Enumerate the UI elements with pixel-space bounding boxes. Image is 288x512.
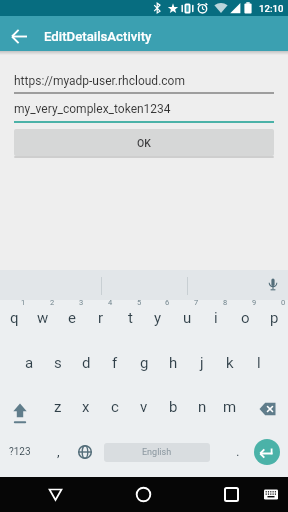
staticText: c [111,398,119,416]
staticText: t [128,309,133,327]
staticText: 6 [165,298,170,307]
button[interactable]: v [130,387,158,427]
staticText: 8 [223,298,228,307]
staticText: o [241,309,250,327]
staticText: English [142,447,172,458]
button[interactable] [254,439,280,465]
staticText: g [140,354,149,372]
button[interactable]: a [15,343,43,383]
staticText: s [54,354,62,372]
staticText: z [54,398,62,416]
staticText: j [200,354,204,372]
staticText: x [82,398,90,416]
button[interactable]: m [216,387,244,427]
button[interactable]: . [228,436,248,466]
button[interactable] [6,23,33,50]
staticText: v [140,398,148,416]
staticText: y [154,309,162,327]
staticText: u [183,309,192,327]
staticText: 4 [108,298,113,307]
button[interactable]: y [144,298,172,338]
button[interactable] [258,270,288,300]
button[interactable]: o [231,298,259,338]
button[interactable]: i [202,298,230,338]
staticText: . [236,443,240,459]
button[interactable]: p [260,298,288,338]
button[interactable]: g [130,343,158,383]
staticText: e [68,309,76,327]
button[interactable] [41,480,70,509]
button[interactable]: x [72,387,100,427]
button[interactable]: q [0,298,28,338]
button[interactable] [259,483,283,507]
button[interactable]: h [159,343,187,383]
button[interactable]: w [29,298,57,338]
button[interactable]: d [72,343,100,383]
staticText: m [223,398,237,416]
staticText: 1 [21,298,26,307]
staticText: l [257,354,261,372]
button[interactable]: u [173,298,201,338]
button[interactable]: k [216,343,244,383]
staticText: https://myadp-user.rhcloud.com [14,74,185,88]
staticText: h [169,354,178,372]
staticText: p [270,309,279,327]
staticText: w [37,309,49,327]
staticText: k [226,354,234,372]
button[interactable] [129,480,158,509]
staticText: my_very_complex_token1234 [14,102,171,116]
button[interactable]: n [188,387,216,427]
staticText: a [25,354,34,372]
button[interactable]: l [245,343,273,383]
button[interactable]: English [104,443,210,462]
staticText: n [198,398,207,416]
button[interactable] [250,392,284,426]
button[interactable]: b [159,387,187,427]
staticText: d [82,354,91,372]
button[interactable]: r [87,298,115,338]
staticText: f [112,354,118,372]
staticText: 0 [281,298,286,307]
staticText: 12:10 [259,3,284,14]
staticText: r [98,309,104,327]
button[interactable]: c [101,387,129,427]
staticText: ?123 [9,446,31,458]
staticText: q [10,309,19,327]
button[interactable]: ?123 [2,437,38,467]
staticText: b [169,398,178,416]
button[interactable]: j [188,343,216,383]
button[interactable]: s [44,343,72,383]
staticText: 2 [50,298,55,307]
button[interactable] [217,480,246,509]
staticText: i [214,309,218,327]
staticText: 5 [137,298,142,307]
staticText: 9 [252,298,257,307]
button[interactable] [71,438,99,466]
button[interactable]: OK [14,129,274,156]
button[interactable]: t [116,298,144,338]
staticText: 3 [79,298,84,307]
staticText: EditDetailsActivity [44,29,152,44]
button[interactable]: , [48,436,68,466]
staticText: 7 [194,298,199,307]
staticText: , [57,443,60,459]
button[interactable] [4,392,38,428]
staticText: OK [137,137,151,149]
button[interactable]: z [44,387,72,427]
button[interactable]: e [58,298,86,338]
button[interactable]: f [101,343,129,383]
